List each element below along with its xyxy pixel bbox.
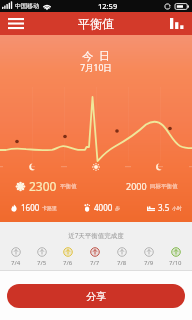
button[interactable]: 7/8 <box>108 247 135 267</box>
staticText: 步 <box>115 205 120 211</box>
staticText: 1600 <box>21 202 40 213</box>
staticText: 目标平衡值 <box>150 183 178 190</box>
staticText: 7/9 <box>144 259 154 267</box>
staticText: 7/7 <box>90 259 100 267</box>
staticText: 中国移动 <box>15 2 39 10</box>
staticText: 7/10 <box>169 259 182 267</box>
staticText: 平衡值 <box>60 183 77 190</box>
staticText: 2000 <box>126 180 147 192</box>
staticText: 今 日 <box>0 48 192 63</box>
button[interactable]: 7/4 <box>3 247 29 267</box>
button[interactable]: 7/9 <box>135 247 162 267</box>
staticText: 7/6 <box>63 259 73 267</box>
staticText: 3.5 <box>158 202 170 213</box>
staticText: 平衡值 <box>78 16 114 31</box>
staticText: 小时 <box>172 205 182 211</box>
button[interactable]: Statistics <box>165 12 189 35</box>
staticText: 近7天平衡值完成度 <box>0 231 192 240</box>
staticText: 7月10日 <box>0 62 192 74</box>
staticText: 分享 <box>86 290 106 303</box>
staticText: 7/4 <box>11 259 21 267</box>
button[interactable]: 7/7 <box>81 247 108 267</box>
staticText: 卡路里 <box>42 205 57 211</box>
staticText: 2300 <box>29 178 57 194</box>
staticText: 7/5 <box>37 259 47 267</box>
button[interactable]: 7/10 <box>162 247 189 267</box>
staticText: 4000 <box>94 202 113 213</box>
button[interactable]: Menu <box>4 12 28 35</box>
button[interactable]: 7/5 <box>29 247 55 267</box>
staticText: 12:59 <box>98 1 118 11</box>
button[interactable]: 7/6 <box>55 247 81 267</box>
staticText: 7/8 <box>117 259 127 267</box>
button[interactable]: 分享 <box>7 284 185 308</box>
